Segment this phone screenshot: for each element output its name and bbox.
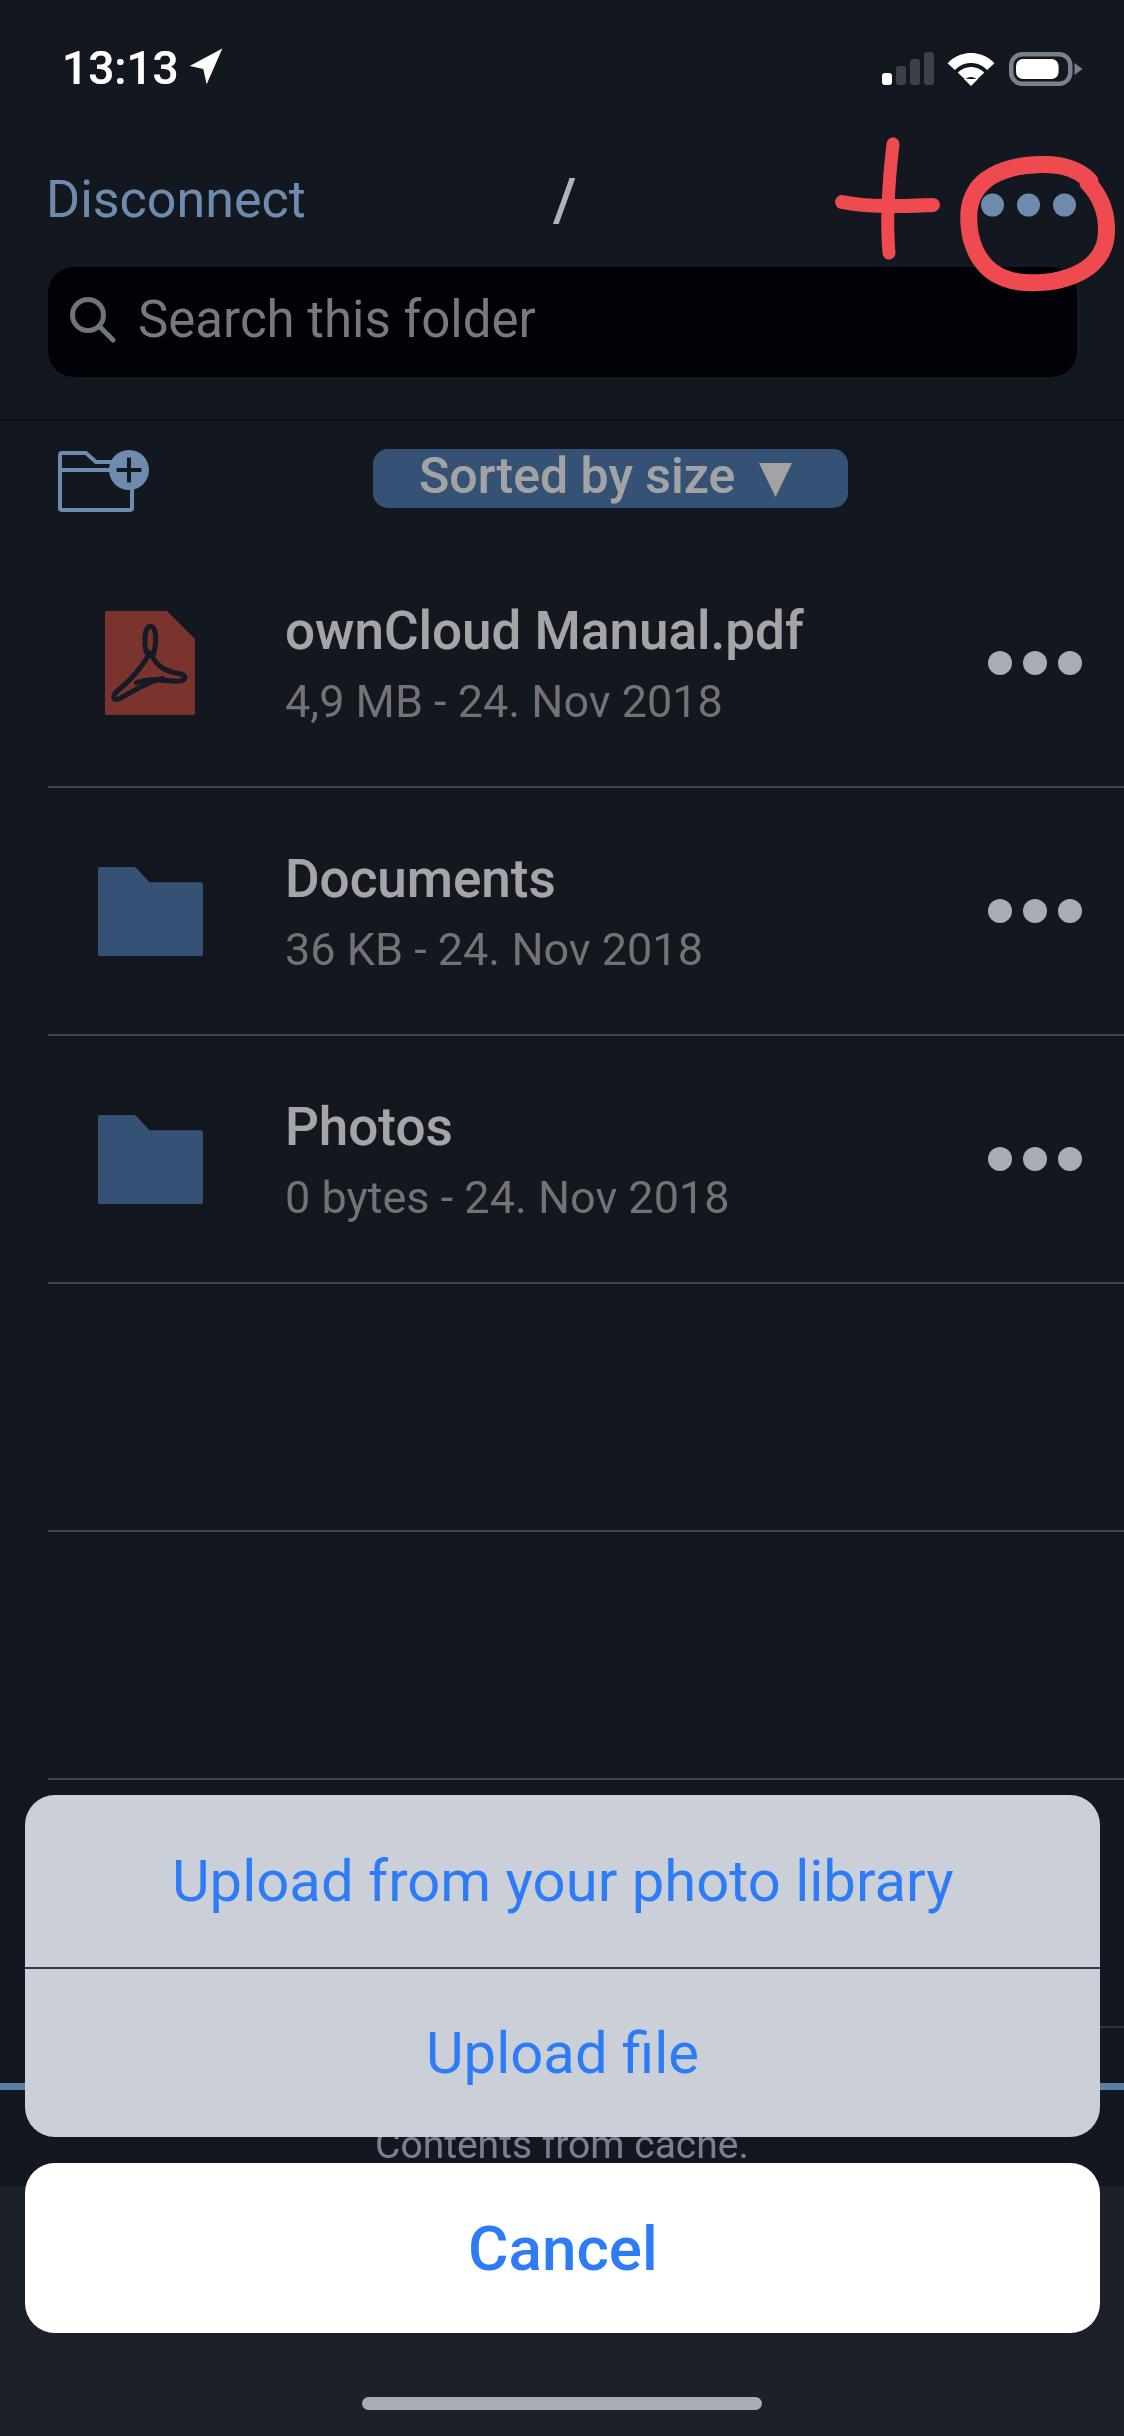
button[interactable]: Upload from your photo library: [25, 1795, 1100, 1967]
staticText: Search this folder: [138, 290, 536, 350]
button[interactable]: Item actions: [970, 615, 1100, 711]
button[interactable]: Cancel: [25, 2163, 1100, 2333]
button[interactable]: Search this folder: [48, 267, 1077, 377]
staticText: Photos: [285, 1096, 453, 1158]
staticText: Documents: [285, 848, 556, 910]
button[interactable]: Item actions: [970, 863, 1100, 959]
button[interactable]: More options: [964, 160, 1093, 250]
staticText: 13:13: [62, 41, 179, 95]
staticText: /: [553, 164, 577, 234]
staticText: Disconnect: [46, 169, 306, 230]
staticText: Sorted by size: [419, 449, 736, 506]
staticText: Contents from cache.: [375, 2122, 749, 2168]
staticText: ownCloud Manual.pdf: [285, 600, 804, 662]
button[interactable]: New folder: [48, 440, 164, 526]
button[interactable]: ownCloud Manual.pdf: [0, 539, 1124, 787]
staticText: Cancel: [468, 2212, 658, 2285]
staticText: Upload file: [426, 2019, 700, 2087]
button[interactable]: Documents: [0, 787, 1124, 1035]
staticText: Upload from your photo library: [172, 1847, 954, 1915]
button[interactable]: Item actions: [970, 1111, 1100, 1207]
button[interactable]: Upload file: [25, 1969, 1100, 2137]
button[interactable]: Photos: [0, 1035, 1124, 1283]
staticText: 4,9 MB - 24. Nov 2018: [285, 675, 723, 728]
button[interactable]: Sorted by size: [373, 449, 848, 508]
staticText: 0 bytes - 24. Nov 2018: [285, 1171, 730, 1224]
button[interactable]: Disconnect: [32, 161, 306, 233]
staticText: 36 KB - 24. Nov 2018: [285, 923, 703, 976]
